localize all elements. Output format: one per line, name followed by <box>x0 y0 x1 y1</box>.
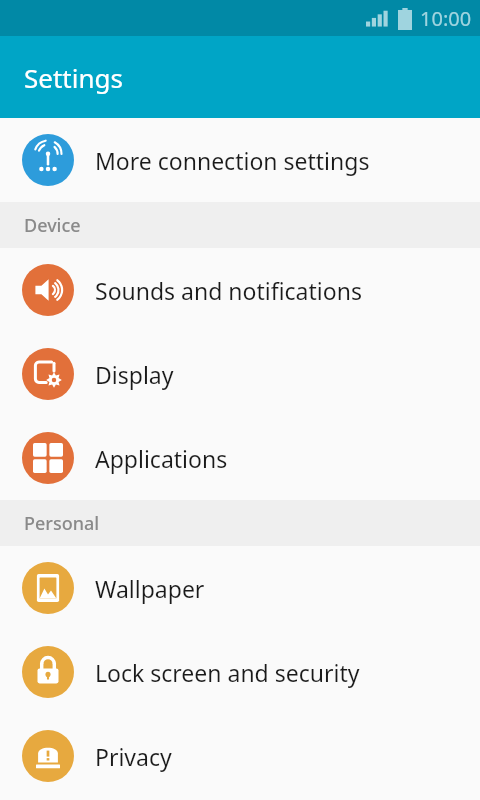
staticText: Wallpaper <box>95 573 205 604</box>
staticText: Display <box>95 359 174 390</box>
button[interactable]: Wallpaper <box>0 546 480 630</box>
button[interactable]: Sounds and notifications <box>0 248 480 332</box>
staticText: Privacy <box>95 741 172 772</box>
button[interactable]: More connection settings <box>0 118 480 202</box>
staticText: More connection settings <box>95 145 370 176</box>
staticText: Lock screen and security <box>95 657 360 688</box>
staticText: Settings <box>24 60 123 95</box>
button[interactable]: Privacy <box>0 714 480 798</box>
staticText: Device <box>24 213 81 238</box>
button[interactable]: Display <box>0 332 480 416</box>
staticText: Personal <box>24 511 100 536</box>
button[interactable]: Lock screen and security <box>0 630 480 714</box>
button[interactable]: Applications <box>0 416 480 500</box>
staticText: 10:00 <box>420 5 472 32</box>
staticText: Sounds and notifications <box>95 275 362 306</box>
staticText: Applications <box>95 443 228 474</box>
